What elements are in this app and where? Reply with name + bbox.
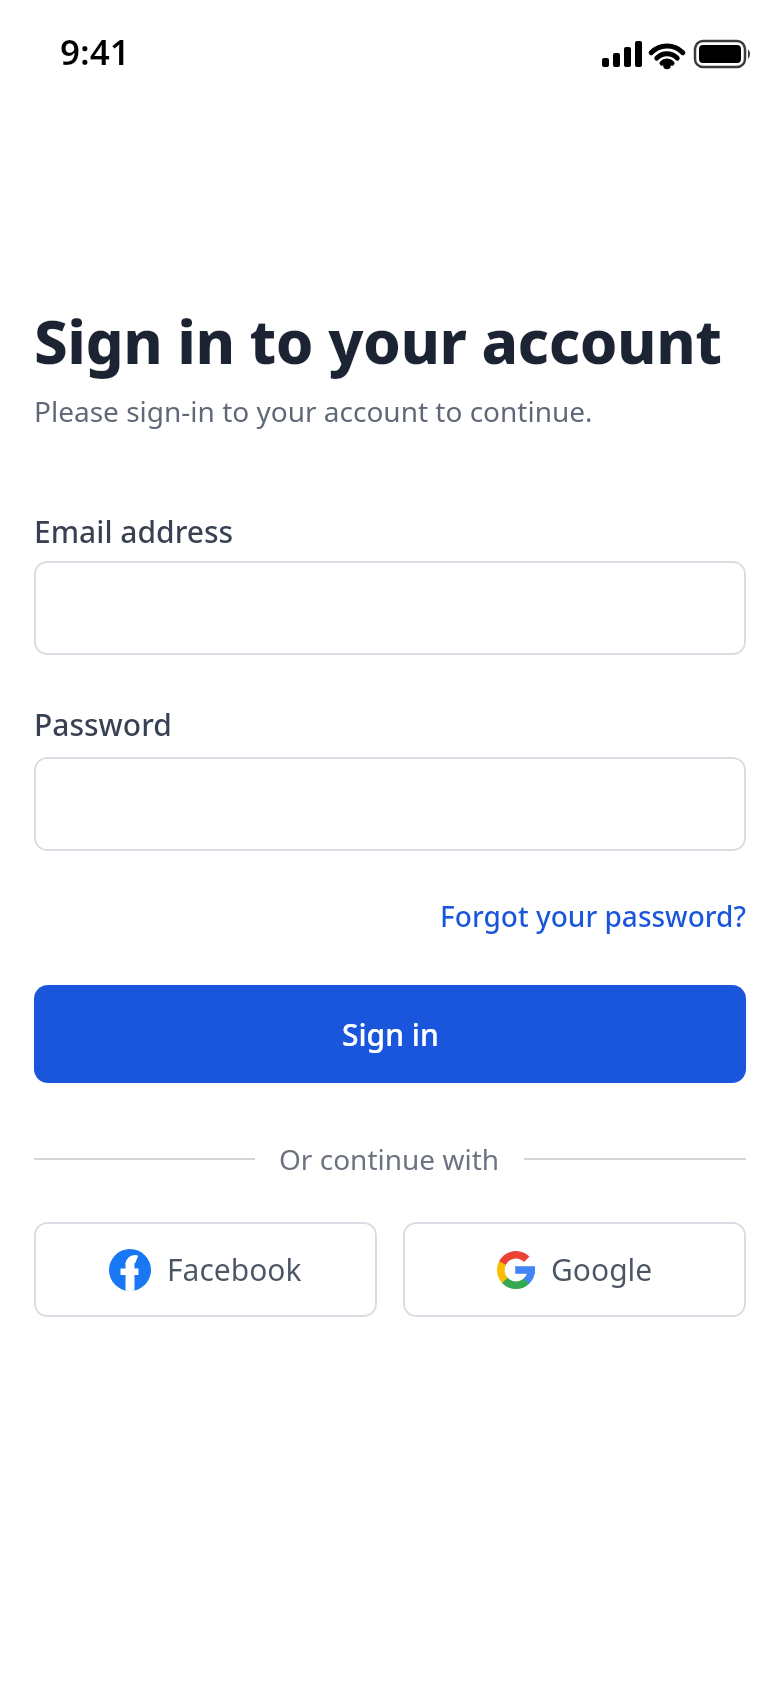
button[interactable]: Facebook — [34, 1222, 377, 1317]
staticText: Sign in — [342, 1014, 439, 1055]
staticText: Facebook — [167, 1249, 302, 1290]
staticText: Email address — [34, 511, 234, 552]
staticText: Google — [551, 1249, 653, 1290]
button[interactable] — [34, 757, 746, 851]
button[interactable]: Google — [403, 1222, 746, 1317]
staticText: Password — [34, 704, 172, 745]
button[interactable]: Forgot your password? — [440, 897, 746, 935]
staticText: Please sign-in to your account to contin… — [34, 392, 593, 430]
staticText: 9:41 — [60, 28, 130, 76]
staticText: Sign in to your account — [34, 300, 722, 382]
button[interactable]: Sign in — [34, 985, 746, 1083]
staticText: Or continue with — [279, 1140, 500, 1178]
button[interactable] — [34, 561, 746, 655]
